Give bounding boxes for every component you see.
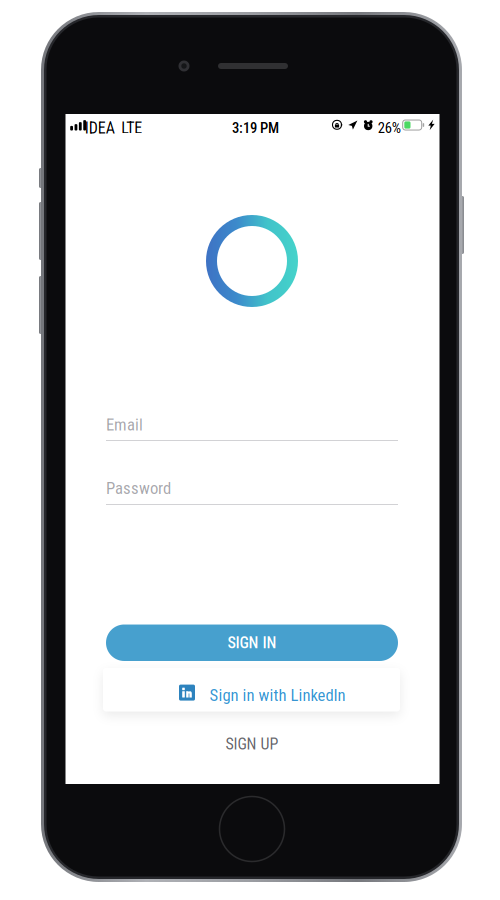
staticText: SIGN UP bbox=[225, 735, 278, 753]
staticText: SIGN IN bbox=[227, 633, 276, 652]
staticText: IDEA bbox=[85, 119, 115, 137]
button[interactable]: SIGN UP bbox=[106, 732, 398, 756]
staticText: Email bbox=[106, 415, 143, 434]
staticText: Password bbox=[106, 478, 171, 498]
button[interactable]: SIGN IN bbox=[106, 624, 398, 661]
button[interactable]: Sign in with LinkedIn bbox=[103, 668, 400, 711]
staticText: Sign in with LinkedIn bbox=[209, 685, 345, 705]
staticText: 3:19 PM bbox=[232, 119, 279, 137]
staticText: LTE bbox=[121, 119, 142, 137]
staticText: 26% bbox=[378, 119, 401, 136]
